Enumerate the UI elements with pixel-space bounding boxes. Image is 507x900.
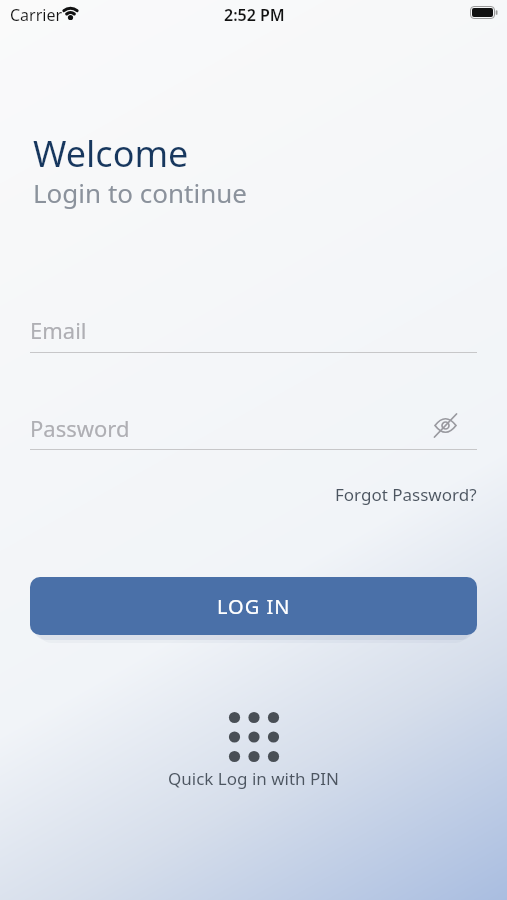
- staticText: 2:52 PM: [224, 4, 285, 26]
- staticText: Email: [30, 315, 87, 345]
- button[interactable]: Forgot Password?: [335, 483, 477, 506]
- button[interactable]: [433, 413, 458, 438]
- staticText: LOG IN: [217, 593, 291, 620]
- button[interactable]: Password: [30, 410, 477, 451]
- staticText: Carrier: [10, 4, 63, 26]
- staticText: Password: [30, 413, 130, 443]
- button[interactable]: LOG IN: [30, 577, 477, 635]
- staticText: Login to continue: [33, 175, 247, 210]
- staticText: Forgot Password?: [335, 483, 477, 506]
- button[interactable]: Email: [30, 312, 477, 354]
- button[interactable]: [160, 700, 347, 800]
- staticText: Quick Log in with PIN: [0, 767, 507, 790]
- staticText: Welcome: [33, 129, 189, 178]
